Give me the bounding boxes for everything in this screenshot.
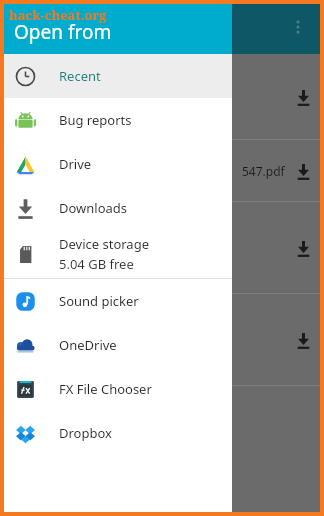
staticText: Dropbox	[59, 424, 112, 442]
button[interactable]	[0, 54, 324, 140]
staticText: 5.04 GB free	[59, 255, 134, 273]
button[interactable]: More options	[280, 9, 316, 45]
button[interactable]: Dropbox	[0, 411, 232, 455]
button[interactable]: Device storage	[0, 230, 232, 278]
staticText: Open from	[14, 19, 112, 45]
staticText: OneDrive	[59, 336, 117, 354]
staticText: Recent	[59, 67, 101, 85]
staticText: hack-cheat.org	[9, 6, 107, 24]
staticText: Sound picker	[59, 292, 139, 310]
button[interactable]	[0, 294, 324, 386]
staticText: Bug reports	[59, 111, 132, 129]
button[interactable]: Recent	[0, 54, 232, 98]
button[interactable]	[0, 202, 324, 294]
staticText: FX File Chooser	[59, 380, 152, 398]
button[interactable]: 547.pdf	[0, 140, 324, 202]
button[interactable]: FX File Chooser	[0, 367, 232, 411]
staticText: Downloads	[59, 199, 128, 217]
staticText: Device storage	[59, 235, 149, 253]
button[interactable]: Bug reports	[0, 98, 232, 142]
button[interactable]: Downloads	[0, 186, 232, 230]
button[interactable]: Sound picker	[0, 279, 232, 323]
staticText: 547.pdf	[242, 163, 285, 179]
staticText: Drive	[59, 155, 92, 173]
button[interactable]: OneDrive	[0, 323, 232, 367]
button[interactable]: Drive	[0, 142, 232, 186]
